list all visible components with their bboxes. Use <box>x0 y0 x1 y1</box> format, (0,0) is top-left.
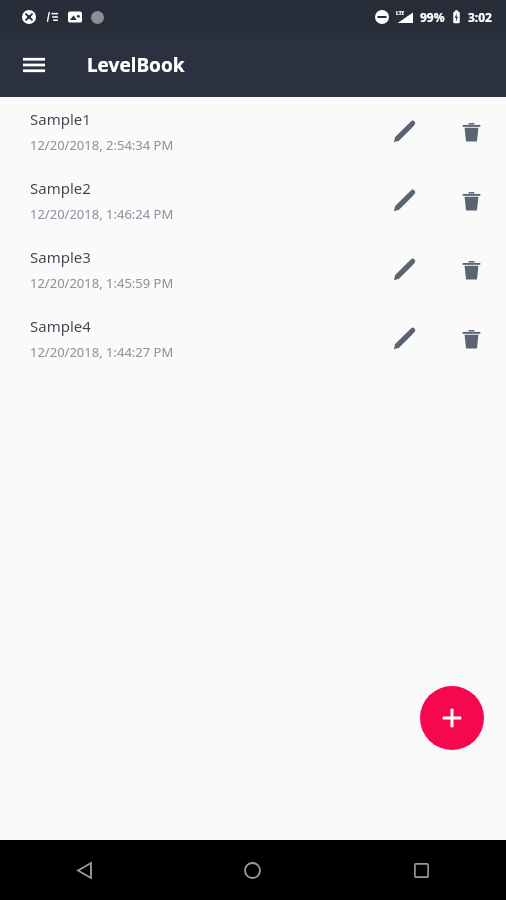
button[interactable]: Edit Sample4 <box>379 315 427 363</box>
staticText: 12/20/2018, 1:44:27 PM <box>30 343 174 361</box>
button[interactable]: Edit Sample2 <box>379 177 427 225</box>
staticText: Sample3 <box>30 247 91 267</box>
staticText: 12/20/2018, 1:45:59 PM <box>30 274 174 292</box>
staticText: LevelBook <box>87 52 185 78</box>
staticText: 3:02 <box>468 9 492 25</box>
button[interactable]: Delete Sample2 <box>447 177 495 225</box>
button[interactable]: Sample3 <box>0 235 506 304</box>
button[interactable]: Sample4 <box>0 304 506 373</box>
staticText: Sample2 <box>30 178 91 198</box>
staticText: 99% <box>420 9 445 25</box>
staticText: Sample4 <box>30 316 91 336</box>
button[interactable]: Edit Sample1 <box>379 108 427 156</box>
staticText: Sample1 <box>30 109 91 129</box>
button[interactable]: Delete Sample4 <box>447 315 495 363</box>
button[interactable]: Recent apps <box>337 840 506 900</box>
staticText: 12/20/2018, 1:46:24 PM <box>30 205 174 223</box>
button[interactable]: Delete Sample3 <box>447 246 495 294</box>
button[interactable]: Delete Sample1 <box>447 108 495 156</box>
button[interactable]: Open navigation menu <box>10 41 58 89</box>
staticText: 12/20/2018, 2:54:34 PM <box>30 136 174 154</box>
button[interactable]: Add new sample <box>420 686 484 750</box>
button[interactable]: Edit Sample3 <box>379 246 427 294</box>
button[interactable]: Home <box>168 840 337 900</box>
button[interactable]: Back <box>0 840 168 900</box>
staticText: LTE <box>396 10 405 17</box>
button[interactable]: Sample2 <box>0 166 506 235</box>
button[interactable]: Sample1 <box>0 97 506 166</box>
